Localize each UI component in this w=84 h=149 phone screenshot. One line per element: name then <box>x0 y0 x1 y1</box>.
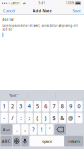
staticText: Carrier <box>10 1 19 5</box>
staticText: Lorem ipsum dolor sit amet, consectetur … <box>2 24 78 31</box>
button[interactable]: ( <box>34 113 41 123</box>
button[interactable]: 9 <box>67 101 74 112</box>
staticText: 9 <box>69 103 72 110</box>
staticText: 6 <box>44 103 47 110</box>
button[interactable]: Cancel <box>3 7 15 14</box>
button[interactable]: 4 <box>25 101 33 112</box>
staticText: #+= <box>3 127 10 132</box>
button[interactable]: ) <box>42 113 49 123</box>
staticText: & <box>60 114 64 121</box>
button[interactable]: . <box>13 124 20 135</box>
button[interactable]: return <box>64 136 83 146</box>
staticText: Save <box>72 8 80 13</box>
button[interactable]: 8 <box>59 101 66 112</box>
button[interactable]: : <box>17 113 24 123</box>
staticText: 4 <box>28 103 31 110</box>
button[interactable]: @ <box>67 113 74 123</box>
button[interactable]: , <box>21 124 29 135</box>
button[interactable]: 2 <box>9 101 16 112</box>
staticText: " <box>78 114 80 121</box>
staticText: ABC <box>2 138 11 144</box>
staticText: ? <box>32 126 34 133</box>
staticText: , <box>24 126 25 133</box>
staticText: space <box>42 138 52 144</box>
staticText: 5 <box>36 103 39 110</box>
staticText: ( <box>36 114 38 121</box>
staticText: “text” <box>9 92 18 98</box>
button[interactable]: ’ <box>46 124 53 135</box>
button[interactable]: & <box>59 113 66 123</box>
button[interactable]: Save <box>70 7 80 14</box>
staticText: 2 <box>11 103 14 110</box>
button[interactable]: ? <box>30 124 37 135</box>
staticText: / <box>12 114 14 121</box>
staticText: $ <box>53 114 56 121</box>
button[interactable]: 6 <box>42 101 49 112</box>
button[interactable]: ! <box>38 124 45 135</box>
button[interactable]: - <box>1 113 8 123</box>
staticText: 8 <box>61 103 64 110</box>
button[interactable]: 0 <box>75 101 83 112</box>
staticText: 7 <box>53 103 56 110</box>
button[interactable]: 5 <box>34 101 41 112</box>
button[interactable]: $ <box>50 113 58 123</box>
button[interactable]: 1 <box>1 101 8 112</box>
staticText: @ <box>68 114 73 121</box>
staticText: - <box>3 114 5 121</box>
button[interactable]: 7 <box>50 101 58 112</box>
staticText: Cancel <box>3 8 15 13</box>
button[interactable]: “text” <box>1 91 27 100</box>
staticText: 1 <box>3 103 6 110</box>
button[interactable]: #+= <box>1 124 12 135</box>
staticText: return <box>68 138 79 144</box>
staticText: ) <box>45 114 47 121</box>
staticText: ; <box>29 114 30 121</box>
staticText: Add text 1 <box>2 18 16 21</box>
button[interactable]: / <box>9 113 16 123</box>
staticText: 0 <box>77 103 80 110</box>
staticText: Add Note <box>32 8 51 13</box>
staticText: ! <box>41 126 42 133</box>
staticText: : <box>20 114 21 121</box>
button[interactable]: Next keyboard <box>13 136 20 146</box>
button[interactable]: Dictate <box>21 136 29 146</box>
button[interactable]: Delete <box>54 124 66 135</box>
button[interactable]: space <box>30 136 64 146</box>
staticText: 3 <box>19 103 22 110</box>
button[interactable]: " <box>75 113 83 123</box>
staticText: ’ <box>49 126 50 133</box>
staticText: 100% <box>66 1 74 5</box>
staticText: 9:41 <box>38 1 45 5</box>
button[interactable]: ABC <box>1 136 12 146</box>
button[interactable]: 3 <box>17 101 24 112</box>
button[interactable]: ; <box>25 113 33 123</box>
staticText: . <box>16 126 17 133</box>
